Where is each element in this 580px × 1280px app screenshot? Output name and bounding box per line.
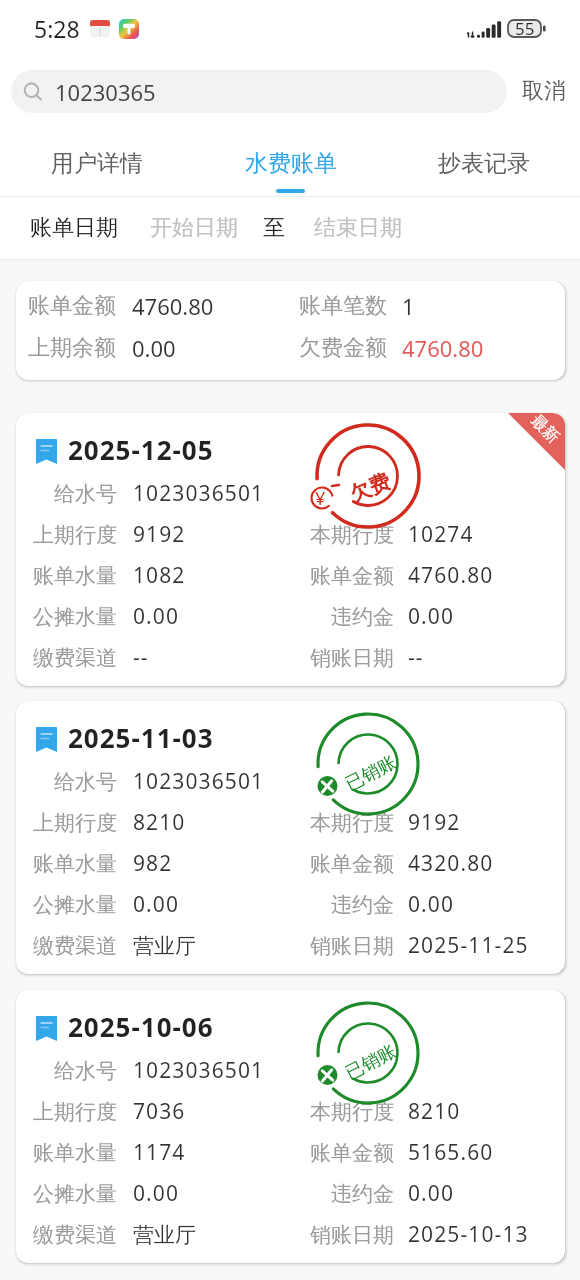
staticText: 结束日期 xyxy=(314,214,402,242)
staticText: 4760.80 xyxy=(402,333,484,363)
staticText: 55 xyxy=(515,17,535,40)
button[interactable]: 2025-12-05 xyxy=(16,413,565,686)
staticText: 4320.80 xyxy=(408,849,494,878)
staticText: 已销账 xyxy=(342,1040,400,1085)
staticText: 销账日期 xyxy=(291,1222,394,1248)
staticText: 1023036501 xyxy=(133,479,265,508)
staticText: 账单金额 xyxy=(291,1140,394,1166)
staticText: 上期余额 xyxy=(28,334,116,362)
staticText: 公摊水量 xyxy=(16,1181,117,1207)
staticText: 2025-10-13 xyxy=(408,1220,529,1249)
staticText: 1023036501 xyxy=(133,1056,265,1085)
staticText: 10230365 xyxy=(55,77,156,107)
staticText: 账单水量 xyxy=(16,563,117,589)
staticText: 最新 xyxy=(527,413,563,447)
staticText: 水费账单 xyxy=(245,149,337,178)
staticText: 开始日期 xyxy=(150,214,238,242)
staticText: 5:28 xyxy=(34,13,80,44)
button[interactable]: 取消 xyxy=(512,67,576,115)
staticText: 0.00 xyxy=(408,1179,455,1208)
staticText: 欠费 xyxy=(346,468,394,508)
button[interactable]: 2025-11-03 xyxy=(16,701,565,974)
staticText: 已销账 xyxy=(342,751,400,796)
staticText: 0.00 xyxy=(133,890,180,919)
staticText: 7036 xyxy=(133,1097,186,1126)
staticText: 1174 xyxy=(133,1138,186,1167)
staticText: 本期行度 xyxy=(291,810,394,836)
staticText: 账单金额 xyxy=(291,851,394,877)
staticText: 抄表记录 xyxy=(438,149,530,178)
staticText: 欠费金额 xyxy=(299,334,387,362)
staticText: 0.00 xyxy=(133,1179,180,1208)
staticText: 上期行度 xyxy=(16,522,117,548)
staticText: 4760.80 xyxy=(132,291,214,321)
staticText: 1023036501 xyxy=(133,767,265,796)
button[interactable]: 10230365 xyxy=(11,70,507,113)
button[interactable]: 结束日期 xyxy=(314,214,402,242)
staticText: 至 xyxy=(263,214,285,242)
staticText: 0.00 xyxy=(408,602,455,631)
staticText: 缴费渠道 xyxy=(16,933,117,959)
staticText: 本期行度 xyxy=(291,522,394,548)
button[interactable]: 抄表记录 xyxy=(387,124,580,196)
staticText: 账单笔数 xyxy=(299,292,387,320)
staticText: 给水号 xyxy=(16,481,117,507)
staticText: 取消 xyxy=(522,77,566,105)
staticText: 用户详情 xyxy=(51,149,143,178)
staticText: 上期行度 xyxy=(16,1099,117,1125)
staticText: 缴费渠道 xyxy=(16,645,117,671)
button[interactable]: 2025-10-06 xyxy=(16,990,565,1263)
staticText: 账单水量 xyxy=(16,851,117,877)
staticText: 销账日期 xyxy=(291,933,394,959)
staticText: 给水号 xyxy=(16,1058,117,1084)
staticText: ¥ xyxy=(315,486,326,511)
staticText: 982 xyxy=(133,849,173,878)
staticText: 本期行度 xyxy=(291,1099,394,1125)
staticText: 上期行度 xyxy=(16,810,117,836)
staticText: 2025-11-03 xyxy=(68,720,214,755)
staticText: 营业厅 xyxy=(133,933,196,959)
staticText: 0.00 xyxy=(133,602,180,631)
staticText: 9192 xyxy=(133,520,186,549)
staticText: 2025-11-25 xyxy=(408,931,529,960)
staticText: 公摊水量 xyxy=(16,604,117,630)
button[interactable]: 开始日期 xyxy=(150,214,238,242)
button[interactable]: 水费账单 xyxy=(194,124,387,196)
staticText: 违约金 xyxy=(291,604,394,630)
staticText: -- xyxy=(133,643,149,672)
staticText: 1082 xyxy=(133,561,186,590)
staticText: 4760.80 xyxy=(408,561,494,590)
staticText: 0.00 xyxy=(132,333,176,363)
staticText: 账单金额 xyxy=(291,563,394,589)
staticText: 8210 xyxy=(408,1097,461,1126)
staticText: -- xyxy=(408,643,424,672)
staticText: 营业厅 xyxy=(133,1222,196,1248)
staticText: 账单金额 xyxy=(28,292,116,320)
staticText: 2025-10-06 xyxy=(68,1009,214,1044)
staticText: 公摊水量 xyxy=(16,892,117,918)
staticText: 账单日期 xyxy=(30,214,118,242)
staticText: 5165.60 xyxy=(408,1138,494,1167)
staticText: 0.00 xyxy=(408,890,455,919)
staticText: 8210 xyxy=(133,808,186,837)
staticText: 缴费渠道 xyxy=(16,1222,117,1248)
button[interactable]: 账单金额 xyxy=(16,281,565,380)
staticText: 10274 xyxy=(408,520,474,549)
staticText: 账单水量 xyxy=(16,1140,117,1166)
staticText: 2025-12-05 xyxy=(68,432,214,467)
staticText: 违约金 xyxy=(291,892,394,918)
staticText: 销账日期 xyxy=(291,645,394,671)
staticText: 给水号 xyxy=(16,769,117,795)
staticText: 1 xyxy=(402,291,415,321)
staticText: 9192 xyxy=(408,808,461,837)
button[interactable]: 用户详情 xyxy=(0,124,194,196)
staticText: 违约金 xyxy=(291,1181,394,1207)
